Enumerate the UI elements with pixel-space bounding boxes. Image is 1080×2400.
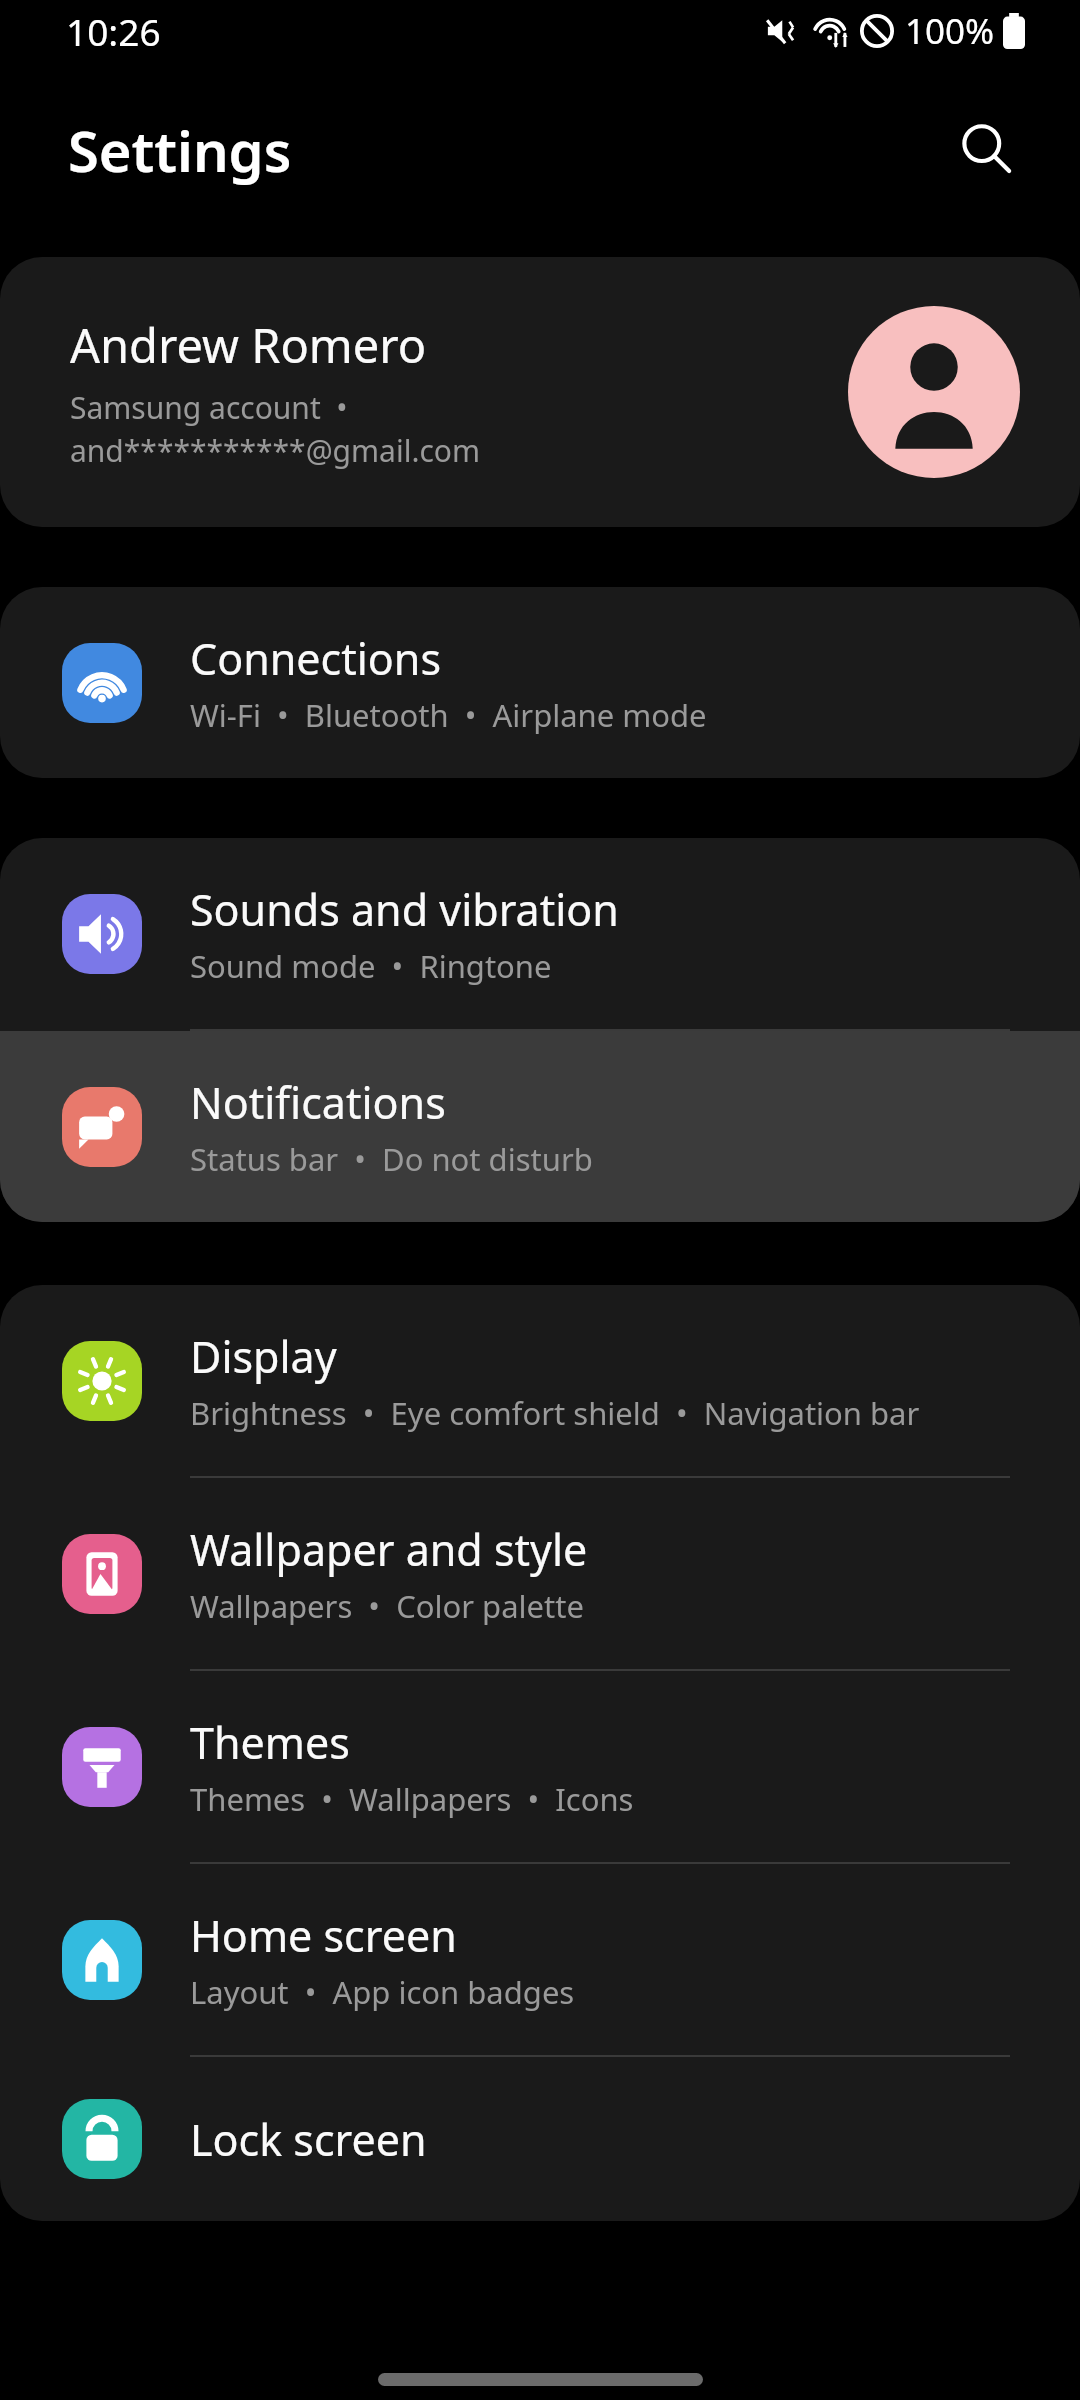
staticText: Themes • Wallpapers • Icons: [190, 1778, 634, 1820]
staticText: Wi-Fi • Bluetooth • Airplane mode: [190, 694, 707, 736]
button[interactable]: Andrew Romero: [0, 257, 1080, 527]
button[interactable]: Themes: [0, 1671, 1080, 1862]
button[interactable]: Lock screen: [0, 2057, 1080, 2221]
staticText: Settings: [68, 112, 292, 188]
staticText: Wallpaper and style: [190, 1520, 588, 1579]
staticText: Display: [190, 1327, 337, 1386]
staticText: 100%: [905, 7, 995, 55]
staticText: and***********@gmail.com: [70, 430, 481, 471]
staticText: Home screen: [190, 1906, 457, 1965]
button[interactable]: Wallpaper and style: [0, 1478, 1080, 1669]
staticText: Andrew Romero: [70, 313, 427, 377]
staticText: Samsung account •: [70, 387, 348, 428]
staticText: Themes: [190, 1713, 350, 1772]
button[interactable]: Home screen: [0, 1864, 1080, 2055]
staticText: 10:26: [66, 6, 161, 56]
staticText: Status bar • Do not disturb: [190, 1138, 593, 1180]
staticText: Sounds and vibration: [190, 880, 619, 939]
staticText: Layout • App icon badges: [190, 1971, 575, 2013]
button[interactable]: Connections: [0, 587, 1080, 778]
staticText: Notifications: [190, 1073, 446, 1132]
staticText: Connections: [190, 629, 442, 688]
button[interactable]: Notifications: [0, 1031, 1080, 1222]
staticText: Brightness • Eye comfort shield • Naviga…: [190, 1392, 920, 1434]
button[interactable]: Sounds and vibration: [0, 838, 1080, 1029]
staticText: Sound mode • Ringtone: [190, 945, 552, 987]
staticText: Wallpapers • Color palette: [190, 1585, 584, 1627]
button[interactable]: Display: [0, 1285, 1080, 1476]
button[interactable]: Search: [942, 105, 1032, 195]
staticText: Lock screen: [190, 2110, 427, 2169]
